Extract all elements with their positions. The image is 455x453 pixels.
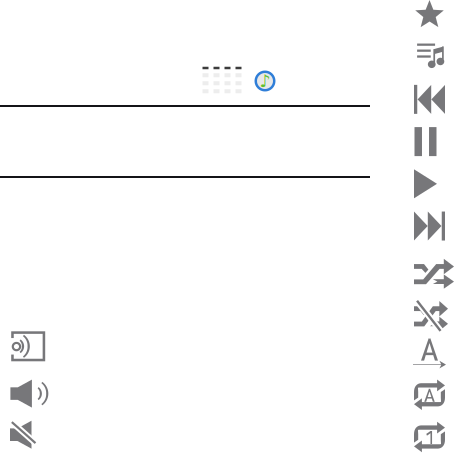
- staticText: ♪: [259, 71, 270, 91]
- button[interactable]: Repeat All: [414, 381, 445, 409]
- button[interactable]: Repeat One: [414, 423, 445, 451]
- button[interactable]: Favourite: [414, 0, 445, 30]
- button[interactable]: Previous: [414, 85, 445, 114]
- button[interactable]: Play: [414, 169, 437, 198]
- button[interactable]: Shuffle: [414, 260, 454, 289]
- button[interactable]: Next: [414, 211, 445, 240]
- button[interactable]: Continuous: [413, 339, 446, 369]
- button[interactable]: Up Next: [414, 42, 445, 72]
- button[interactable]: Volume: [10, 380, 44, 408]
- button[interactable]: Shuffle Off: [414, 302, 448, 331]
- button[interactable]: Pause: [414, 127, 436, 156]
- button[interactable]: Mute: [10, 421, 36, 449]
- button[interactable]: AirPlay Audio: [11, 331, 46, 361]
